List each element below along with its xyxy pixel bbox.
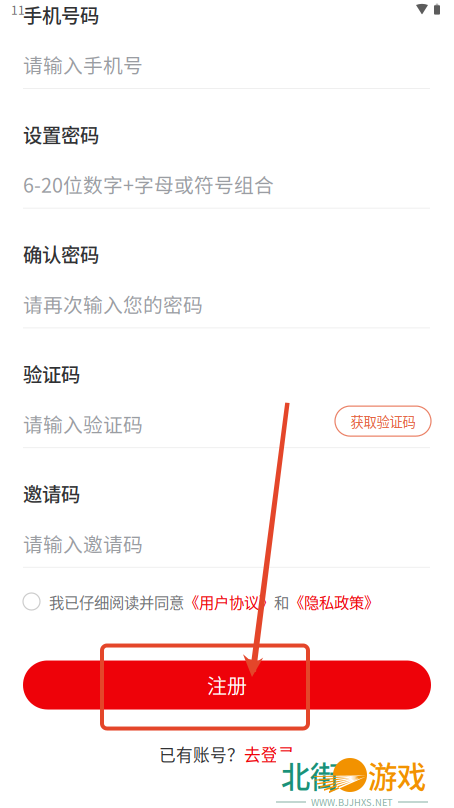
staticText: 请输入验证码 <box>23 409 143 438</box>
staticText: 《隐私政策》 <box>289 590 379 613</box>
staticText: 获取验证码 <box>350 411 415 431</box>
staticText: 注册 <box>207 670 247 699</box>
staticText: 6-20位数字+字母或符号组合 <box>23 170 274 198</box>
staticText: 北街 <box>281 754 339 796</box>
staticText: 验证码 <box>23 360 80 388</box>
staticText: 邀请码 <box>23 479 80 507</box>
staticText: 手机号码 <box>23 0 99 28</box>
staticText: 《用户协议》 <box>184 590 274 613</box>
staticText: WWW.BJJHXS.NET <box>311 795 393 808</box>
staticText: 我已仔细阅读并同意 <box>49 590 184 613</box>
staticText: 11 <box>11 1 25 18</box>
button[interactable]: 注册 <box>23 660 431 709</box>
staticText: 确认密码 <box>23 240 99 268</box>
staticText: 请再次输入您的密码 <box>23 290 203 318</box>
button[interactable]: 已有账号？ <box>23 743 431 765</box>
button[interactable]: 获取验证码 <box>335 406 431 436</box>
staticText: 设置密码 <box>23 120 99 148</box>
staticText: 已有账号？ <box>159 742 244 766</box>
staticText: 和 <box>274 590 289 613</box>
staticText: 游戏 <box>368 754 426 796</box>
staticText: 请输入邀请码 <box>23 529 143 558</box>
button[interactable]: 我已仔细阅读并同意 <box>23 587 431 615</box>
staticText: 请输入手机号 <box>23 50 143 79</box>
staticText: 去登录 <box>244 742 295 766</box>
